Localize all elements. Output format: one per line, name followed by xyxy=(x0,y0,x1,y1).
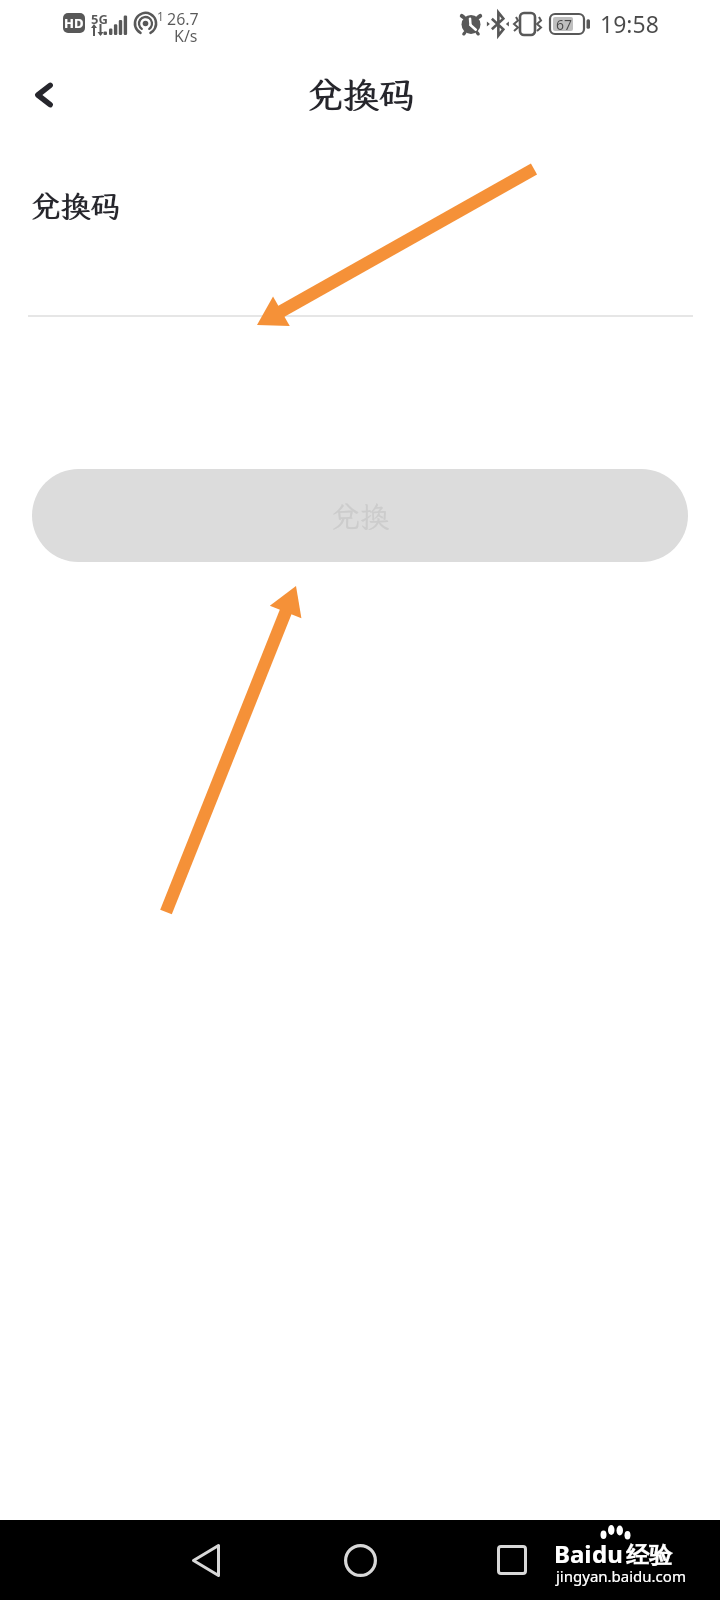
staticText: 兑换码 xyxy=(306,71,415,118)
staticText: HD xyxy=(64,14,84,32)
button[interactable]: Back xyxy=(176,1530,236,1590)
staticText: du xyxy=(592,1537,623,1570)
button[interactable]: Recents xyxy=(482,1530,542,1590)
button[interactable]: 兑换 xyxy=(32,469,688,562)
staticText: 兑换码 xyxy=(30,186,120,226)
staticText: 兑换码 xyxy=(307,71,416,118)
staticText: jingyan.baidu.com xyxy=(556,1566,686,1586)
staticText: 19:58 xyxy=(600,8,659,39)
button[interactable]: Home xyxy=(330,1530,390,1590)
staticText: 5G xyxy=(91,10,108,28)
staticText: Bai xyxy=(554,1537,592,1570)
button[interactable]: Redeem code input field xyxy=(28,240,693,317)
staticText: K/s xyxy=(174,25,198,47)
staticText: 兑换 xyxy=(331,497,390,535)
button[interactable]: Back xyxy=(19,70,69,120)
staticText: 兑换码 xyxy=(31,186,121,226)
staticText: 经验 xyxy=(626,1541,672,1570)
staticText: 67 xyxy=(556,15,573,34)
staticText: 1 xyxy=(157,8,164,24)
staticText: 26.7 xyxy=(167,8,199,30)
